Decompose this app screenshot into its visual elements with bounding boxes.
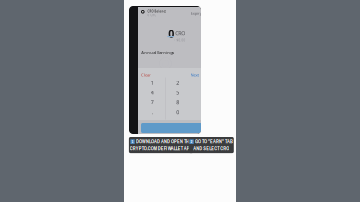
staticText: 0: [168, 27, 174, 41]
staticText: 8: [176, 99, 179, 106]
staticText: CRO: [175, 30, 185, 37]
staticText: 5: [176, 89, 179, 96]
staticText: AND SELECT CRO: [193, 145, 229, 152]
staticText: 0: [176, 109, 179, 116]
staticText: 2: [176, 79, 179, 86]
button[interactable]: 9: [191, 97, 216, 107]
button[interactable]: Next: [191, 72, 200, 77]
staticText: CRYPTO.COM DEFI WALLET APP: [130, 145, 193, 152]
button[interactable]: 0: [165, 107, 191, 117]
button[interactable]: 8: [165, 97, 191, 107]
staticText: Annual Earnings: [141, 50, 174, 55]
staticText: 7: [151, 99, 154, 106]
staticText: 1: [132, 139, 134, 144]
button[interactable]: Clear: [141, 72, 151, 77]
staticText: .: [152, 109, 153, 116]
staticText: Next: [191, 72, 200, 77]
button[interactable]: [141, 123, 202, 133]
button[interactable]: 1: [139, 78, 165, 88]
staticText: Clear: [141, 72, 151, 77]
staticText: ~ $0.00: [174, 39, 186, 42]
button[interactable]: Expiry: [191, 11, 202, 16]
button[interactable]: 5: [165, 88, 191, 97]
button[interactable]: 6: [191, 88, 216, 97]
staticText: CRO Balance: [147, 10, 166, 13]
staticText: DOWNLOAD AND OPEN THE: [136, 138, 192, 145]
button[interactable]: 3: [191, 78, 216, 88]
button[interactable]: 2: [165, 78, 191, 88]
staticText: GO TO "EARN" TAB: [195, 138, 233, 145]
button[interactable]: 7: [139, 97, 165, 107]
staticText: 4: [151, 89, 154, 96]
staticText: 2: [191, 139, 193, 144]
button[interactable]: 4: [139, 88, 165, 97]
staticText: Expiry: [191, 11, 202, 16]
staticText: 0 CRO: [147, 13, 156, 17]
staticText: 1: [151, 79, 154, 86]
